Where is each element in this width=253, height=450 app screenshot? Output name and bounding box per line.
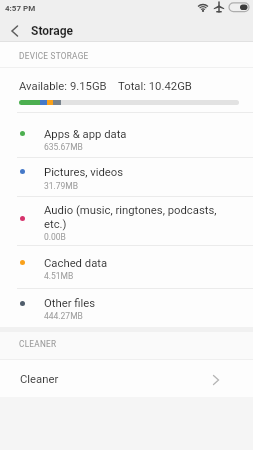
staticText: Apps & app data — [44, 128, 127, 141]
button[interactable] — [4, 20, 28, 42]
button[interactable]: Apps & app data — [0, 112, 253, 157]
button[interactable]: Pictures, videos — [0, 158, 253, 197]
button[interactable]: Cleaner — [0, 360, 253, 397]
staticText: 4.51MB — [44, 271, 74, 281]
staticText: 0.00B — [44, 232, 66, 242]
staticText: etc.) — [44, 218, 67, 231]
staticText: Total: 10.42GB — [118, 80, 192, 93]
staticText: 444.27MB — [44, 311, 83, 321]
staticText: Available: 9.15GB — [19, 80, 107, 93]
staticText: DEVICE STORAGE — [19, 51, 89, 61]
staticText: Other files — [44, 297, 96, 310]
staticText: 635.67MB — [44, 142, 83, 152]
staticText: Storage — [31, 24, 74, 38]
staticText: Pictures, videos — [44, 166, 124, 179]
staticText: 4:57 PM — [5, 4, 36, 13]
button[interactable]: Cached data — [0, 246, 253, 289]
staticText: 31.79MB — [44, 181, 79, 191]
staticText: Cached data — [44, 257, 108, 270]
staticText: Audio (music, ringtones, podcasts, — [44, 204, 217, 217]
button[interactable]: Other files — [0, 289, 253, 328]
button[interactable]: Audio (music, ringtones, podcasts, — [0, 197, 253, 246]
staticText: Cleaner — [20, 373, 59, 386]
staticText: CLEANER — [19, 339, 57, 349]
